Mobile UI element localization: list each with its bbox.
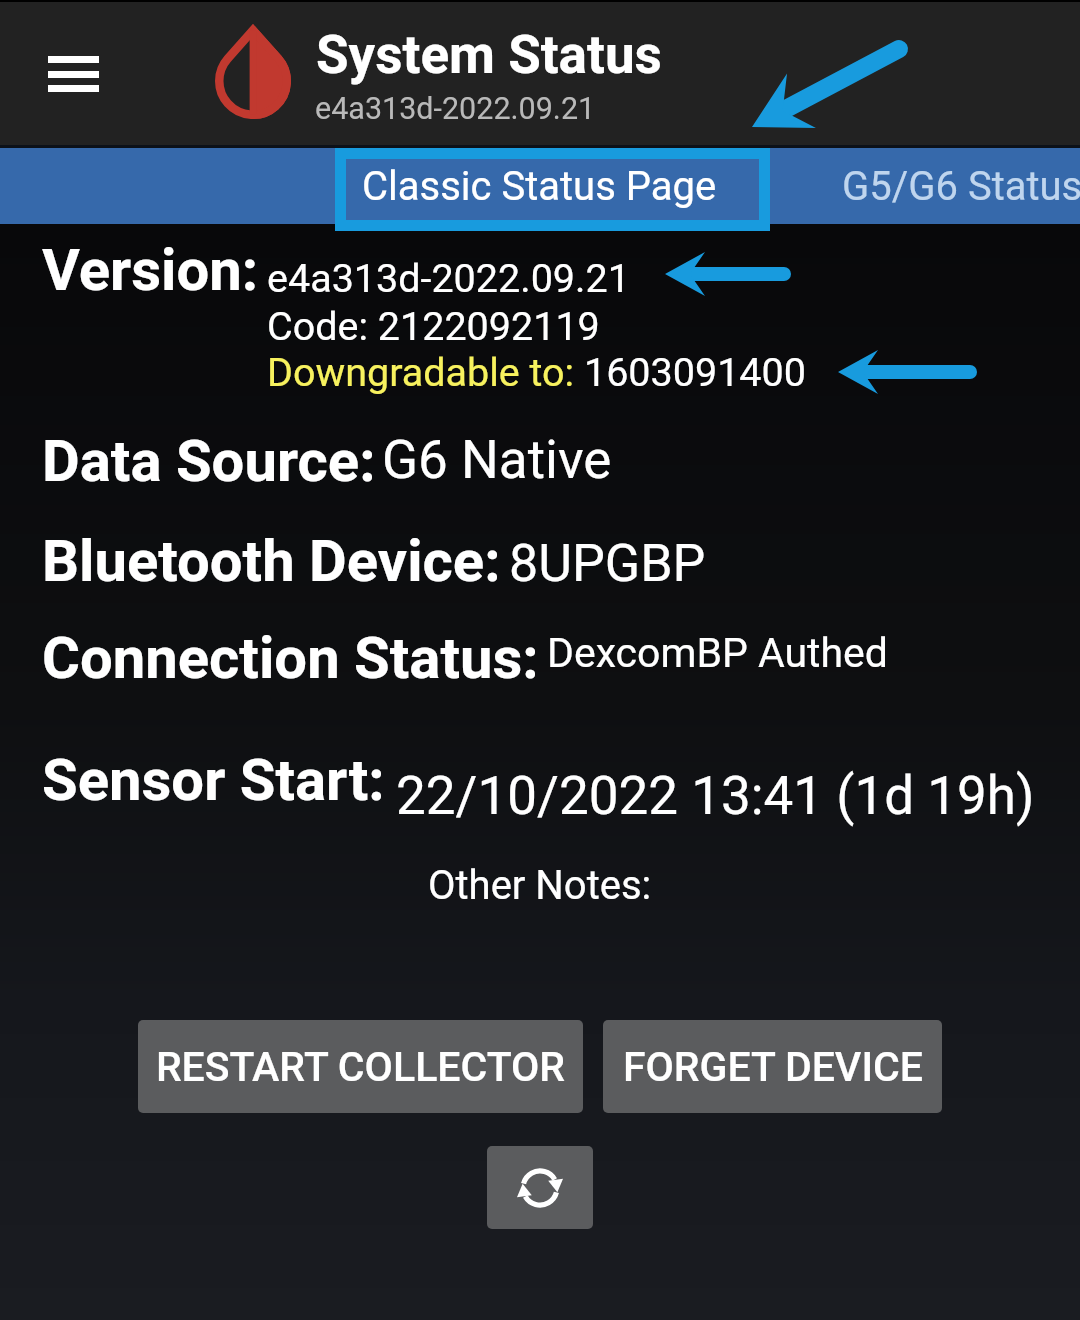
staticText: Classic Status Page [362,163,717,210]
button[interactable]: Open navigation drawer [10,18,120,128]
staticText: e4a313d-2022.09.21 [267,255,630,301]
staticText: Connection Status: [42,624,539,692]
staticText: Sensor Start: [42,746,385,814]
staticText: System Status [316,24,662,86]
staticText: Code: 2122092119 [267,303,600,349]
staticText: 8UPGBP [509,533,706,594]
staticText: Version: [42,236,259,304]
staticText: G5/G6 Status [842,163,1080,210]
staticText: e4a313d-2022.09.21 [315,91,596,127]
staticText: Downgradable to: 1603091400 [267,349,806,395]
staticText: Data Source: [42,427,376,495]
button[interactable]: Classic Status Page [341,148,764,224]
staticText: DexcomBP Authed [547,629,888,677]
button[interactable]: FORGET DEVICE [603,1020,942,1113]
button[interactable]: RESTART COLLECTOR [138,1020,583,1113]
staticText: RESTART COLLECTOR [156,1043,565,1091]
button[interactable]: G5/G6 Status [770,148,1080,224]
staticText: Other Notes: [428,862,652,909]
staticText: 22/10/2022 13:41 (1d 19h) [396,765,1035,827]
staticText: FORGET DEVICE [623,1043,923,1091]
staticText: G6 Native [382,429,612,491]
staticText: Bluetooth Device: [42,527,501,595]
button[interactable]: Refresh status [487,1146,593,1229]
